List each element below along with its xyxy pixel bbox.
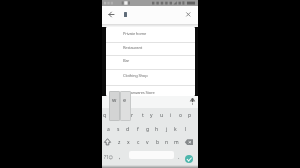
button[interactable] [106,42,195,56]
button[interactable]: l [181,123,190,136]
button[interactable] [106,69,195,85]
staticText: p [188,112,192,119]
button[interactable]: c [134,136,143,149]
button[interactable]: r [128,109,137,122]
button[interactable]: u [157,109,166,122]
button[interactable] [106,55,195,68]
button[interactable]: f [133,123,142,136]
staticText: s [117,126,120,133]
staticText: Private home [123,31,147,37]
staticText: e [123,96,127,103]
staticText: l [185,126,187,133]
button[interactable]: b [153,136,162,149]
staticText: , [119,153,121,160]
staticText: y [150,112,153,119]
button[interactable]: d [123,123,132,136]
staticText: f [137,126,139,133]
staticText: Housewares Store [123,90,155,96]
button[interactable] [102,136,113,149]
button[interactable]: i [166,109,175,122]
staticText: z [118,139,121,146]
button[interactable] [183,9,194,20]
button[interactable]: , [117,152,123,161]
staticText: k [174,126,177,133]
button[interactable]: j [162,123,171,136]
staticText: h [155,126,159,133]
staticText: i [170,112,172,119]
button[interactable] [106,85,195,96]
button[interactable]: q [102,109,109,122]
button[interactable]: n [162,136,171,149]
button[interactable]: e [119,109,128,122]
button[interactable] [106,9,117,20]
staticText: b [156,139,160,146]
staticText: w [112,96,117,103]
button[interactable]: y [147,109,156,122]
staticText: ?1☺ [104,154,114,160]
staticText: m [174,139,179,146]
staticText: Bar [123,58,130,64]
staticText: d [126,126,130,133]
button[interactable]: o [176,109,185,122]
button[interactable]: p [185,109,194,122]
staticText: a [107,126,110,133]
staticText: x [127,139,130,146]
button[interactable] [106,27,195,42]
button[interactable]: v [143,136,152,149]
staticText: u [160,112,164,119]
button[interactable]: . [176,152,182,161]
staticText: . [178,153,180,160]
staticText: Clothing Shop [123,73,148,79]
staticText: j [166,126,168,133]
staticText: n [165,139,169,146]
staticText: v [146,139,149,146]
staticText: t [142,112,144,119]
button[interactable] [102,96,198,108]
button[interactable]: ?1☺ [103,152,115,161]
button[interactable]: z [115,136,124,149]
staticText: c [137,139,140,146]
button[interactable]: k [171,123,180,136]
staticText: q [103,112,107,119]
button[interactable]: x [124,136,133,149]
button[interactable] [185,155,193,163]
button[interactable]: s [114,123,123,136]
staticText: Restaurant [123,45,143,51]
button[interactable]: h [152,123,161,136]
button[interactable]: a [104,123,113,136]
button[interactable]: w [109,109,118,122]
staticText: o [179,112,183,119]
button[interactable] [183,136,195,149]
staticText: g [146,126,150,133]
button[interactable]: g [143,123,152,136]
button[interactable]: m [172,136,181,149]
button[interactable]: t [138,109,147,122]
staticText: r [131,112,134,119]
